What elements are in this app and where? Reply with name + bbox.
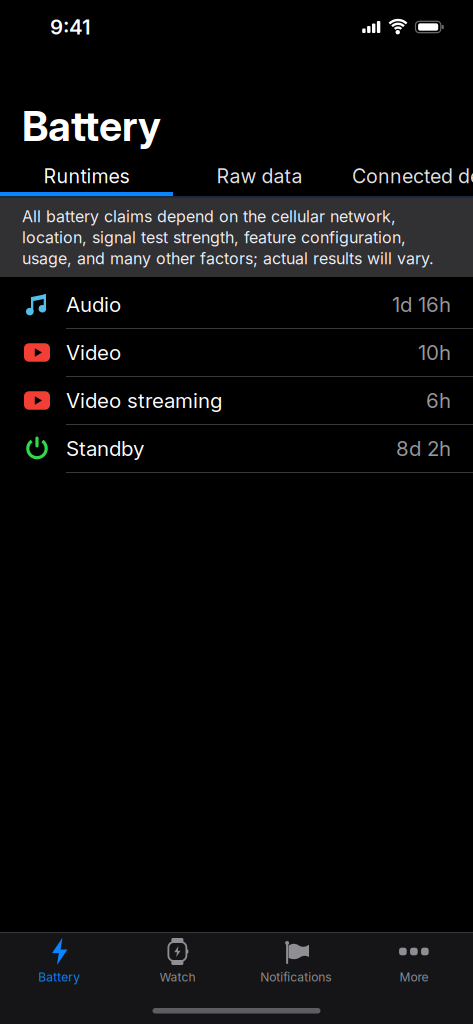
button[interactable]: Video <box>0 329 473 376</box>
button[interactable]: Connected devices <box>352 156 473 192</box>
staticText: More <box>399 970 428 984</box>
staticText: Battery <box>38 970 80 984</box>
staticText: Watch <box>159 970 195 984</box>
button[interactable]: Video streaming <box>0 377 473 424</box>
button[interactable]: More <box>355 933 473 995</box>
staticText: location, signal test strength, feature … <box>22 228 406 247</box>
staticText: Standby <box>66 436 144 461</box>
staticText: All battery claims depend on the cellula… <box>22 207 396 226</box>
staticText: Audio <box>66 292 121 317</box>
staticText: Battery <box>22 102 161 150</box>
staticText: usage, and many other factors; actual re… <box>22 249 434 268</box>
staticText: Video <box>66 340 121 365</box>
button[interactable]: Standby <box>0 425 473 472</box>
button[interactable]: Runtimes <box>0 156 173 192</box>
staticText: Video streaming <box>66 388 223 413</box>
button[interactable]: Watch <box>118 933 236 995</box>
staticText: Connected devices <box>352 164 473 187</box>
button[interactable]: Battery <box>0 933 118 995</box>
staticText: 1d 16h <box>392 292 451 317</box>
staticText: 10h <box>418 340 451 365</box>
staticText: Runtimes <box>43 164 129 187</box>
button[interactable]: Notifications <box>236 933 355 995</box>
staticText: Notifications <box>260 970 331 984</box>
staticText: 6h <box>426 388 451 413</box>
button[interactable]: Raw data <box>173 156 346 192</box>
staticText: Raw data <box>216 164 302 187</box>
staticText: 8d 2h <box>396 436 451 461</box>
staticText: 9:41 <box>50 15 91 39</box>
button[interactable]: Audio <box>0 281 473 328</box>
